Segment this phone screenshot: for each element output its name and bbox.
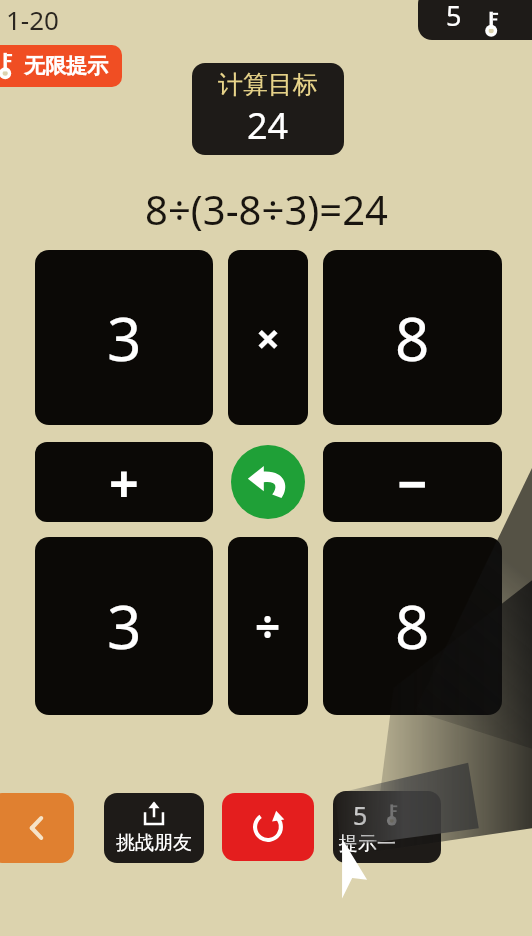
staticText: 挑战朋友 [116,831,192,855]
staticText: ÷ [255,596,281,656]
staticText: 8÷(3-8÷3)=24 [145,182,388,236]
button[interactable]: 8 [323,537,502,715]
staticText: 1-20 [6,2,59,37]
staticText: 3 [107,297,142,379]
button[interactable]: 5 [418,0,532,40]
button[interactable]: 挑战朋友 [104,793,204,863]
staticText: 3 [107,585,142,667]
button[interactable]: 3 [35,250,213,425]
staticText: 8 [395,585,430,667]
button[interactable]: 8 [323,250,502,425]
button[interactable]: 无限提示 [0,45,122,87]
button[interactable]: Back [0,793,74,863]
button[interactable]: Undo [231,445,305,519]
staticText: 5 [353,798,368,832]
staticText: × [256,309,281,366]
staticText: 24 [247,101,289,150]
button[interactable]: 5 [333,791,441,863]
button[interactable]: 3 [35,537,213,715]
staticText: + [109,447,139,518]
button[interactable]: Restart [222,793,314,861]
staticText: 8 [395,297,430,379]
button[interactable]: + [35,442,213,522]
staticText: 提示一 [339,832,396,856]
staticText: 5 [446,0,462,34]
staticText: 计算目标 [218,69,318,100]
button[interactable]: − [323,442,502,522]
staticText: 无限提示 [24,53,108,79]
button[interactable]: 计算目标 [192,63,344,155]
button[interactable]: ÷ [228,537,308,715]
button[interactable]: × [228,250,308,425]
staticText: − [397,447,428,518]
